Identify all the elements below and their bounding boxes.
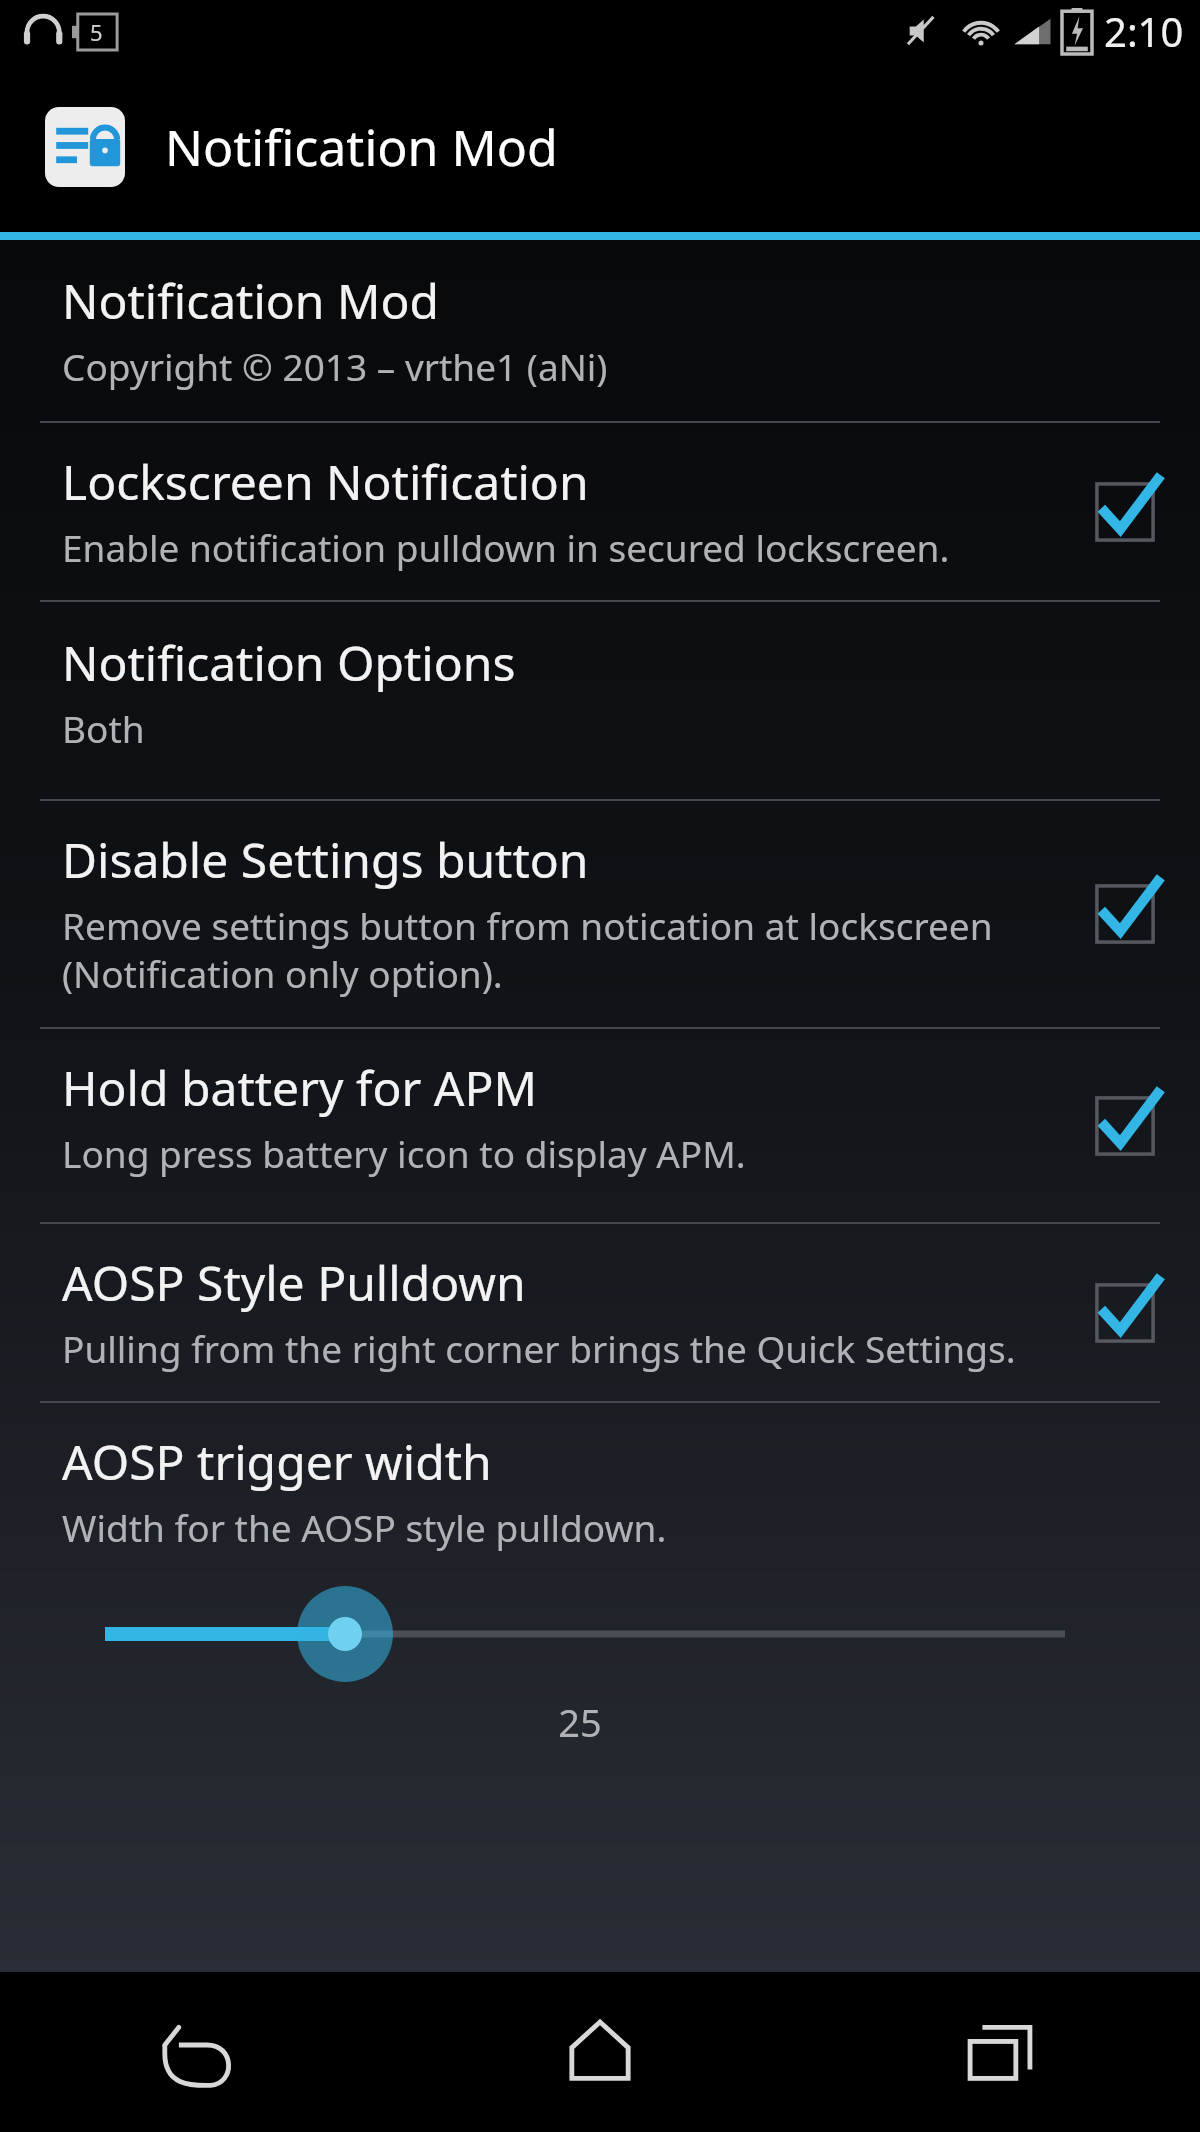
staticText: Long press battery icon to display APM. (62, 1128, 746, 1178)
button[interactable]: Recents (800, 1972, 1200, 2132)
staticText: Disable Settings button (62, 827, 589, 892)
button[interactable]: Disable Settings button (1050, 839, 1200, 989)
staticText: AOSP Style Pulldown (62, 1250, 526, 1315)
button[interactable]: AOSP Style Pulldown (1050, 1238, 1200, 1388)
staticText: 25 (0, 1696, 1160, 1748)
button[interactable]: Lockscreen Notification (1050, 437, 1200, 587)
staticText: AOSP trigger width (62, 1429, 492, 1494)
button[interactable]: Hold battery for APM (1050, 1051, 1200, 1201)
staticText: Width for the AOSP style pulldown. (62, 1502, 667, 1552)
button[interactable]: Notification Options (0, 602, 1200, 799)
staticText: Enable notification pulldown in secured … (62, 522, 950, 572)
staticText: 2:10 (1104, 4, 1184, 58)
staticText: Lockscreen Notification (62, 449, 589, 514)
button[interactable]: Back (0, 1972, 400, 2132)
button[interactable]: AOSP trigger width (0, 1403, 1200, 1748)
staticText: Notification Options (62, 630, 516, 695)
button[interactable]: Home (400, 1972, 800, 2132)
button[interactable]: AOSP Style Pulldown (0, 1224, 1200, 1401)
staticText: Remove settings button from notication a… (62, 900, 1038, 999)
staticText: Notification Mod (62, 268, 440, 333)
button[interactable]: Lockscreen Notification (0, 423, 1200, 600)
staticText: Pulling from the right corner brings the… (62, 1323, 1016, 1373)
button[interactable]: AOSP trigger width slider (0, 1586, 1200, 1682)
button[interactable]: Notification Mod (0, 240, 1200, 421)
staticText: Notification Mod (165, 113, 558, 181)
staticText: 5 (90, 17, 103, 47)
staticText: Hold battery for APM (62, 1055, 538, 1120)
button[interactable]: Disable Settings button (0, 801, 1200, 1027)
button[interactable]: Hold battery for APM (0, 1029, 1200, 1222)
staticText: Both (62, 703, 145, 753)
staticText: Copyright © 2013 – vrthe1 (aNi) (62, 341, 608, 391)
